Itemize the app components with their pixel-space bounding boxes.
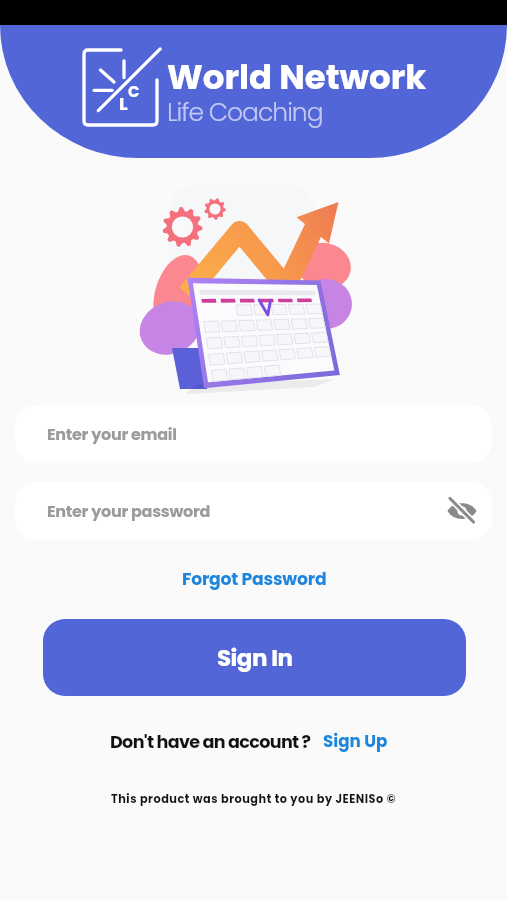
staticText: Enter your password [47, 500, 211, 522]
button[interactable]: Enter your password [15, 482, 492, 540]
other: Show password [446, 495, 478, 527]
button[interactable]: Enter your email [15, 405, 492, 463]
staticText: Enter your email [47, 423, 177, 445]
button[interactable]: Sign Up [315, 725, 396, 756]
staticText: Don't have an account ? [110, 730, 311, 755]
staticText: Forgot Password [182, 567, 327, 591]
staticText: Life Coaching [167, 95, 323, 130]
button[interactable]: Forgot Password [174, 563, 335, 595]
staticText: Sign In [217, 642, 293, 674]
staticText: L [119, 91, 128, 116]
staticText: C [128, 81, 140, 102]
staticText: Sign Up [323, 729, 388, 752]
staticText: World Network [167, 53, 427, 101]
staticText: This product was brought to you by JEENI… [0, 791, 507, 807]
button[interactable]: Sign In [43, 619, 466, 696]
